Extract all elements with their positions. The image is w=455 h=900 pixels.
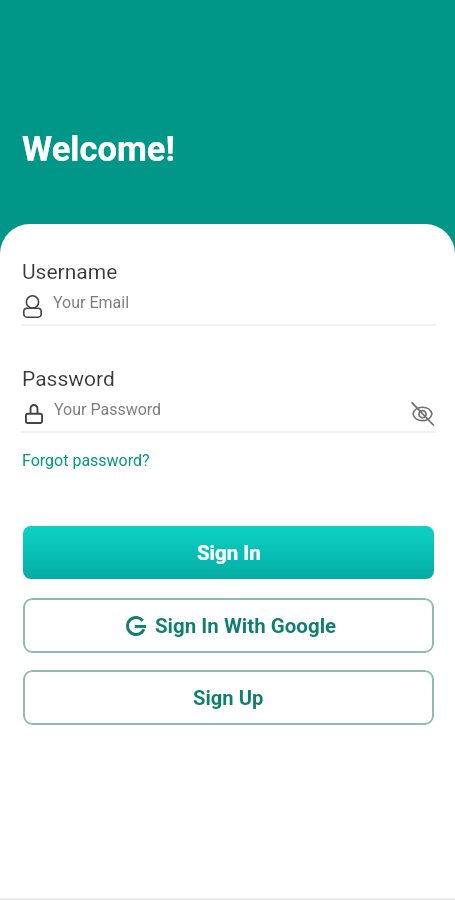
staticText: Your Password	[54, 400, 162, 419]
button[interactable]: Your Password	[21, 395, 399, 433]
button[interactable]: Show password	[403, 394, 441, 432]
staticText: Sign In	[197, 541, 261, 565]
button[interactable]: Your Email	[21, 288, 436, 326]
staticText: Forgot password?	[22, 451, 150, 470]
button[interactable]: Sign In With Google	[23, 598, 434, 653]
staticText: Password	[22, 367, 115, 392]
staticText: Sign Up	[193, 686, 264, 710]
button[interactable]: Sign In	[23, 526, 434, 579]
button[interactable]: Sign Up	[23, 670, 434, 725]
staticText: Username	[22, 260, 118, 285]
staticText: Sign In With Google	[155, 614, 337, 638]
staticText: Your Email	[53, 293, 130, 312]
staticText: Welcome!	[22, 129, 175, 169]
button[interactable]: Forgot password?	[22, 451, 150, 470]
